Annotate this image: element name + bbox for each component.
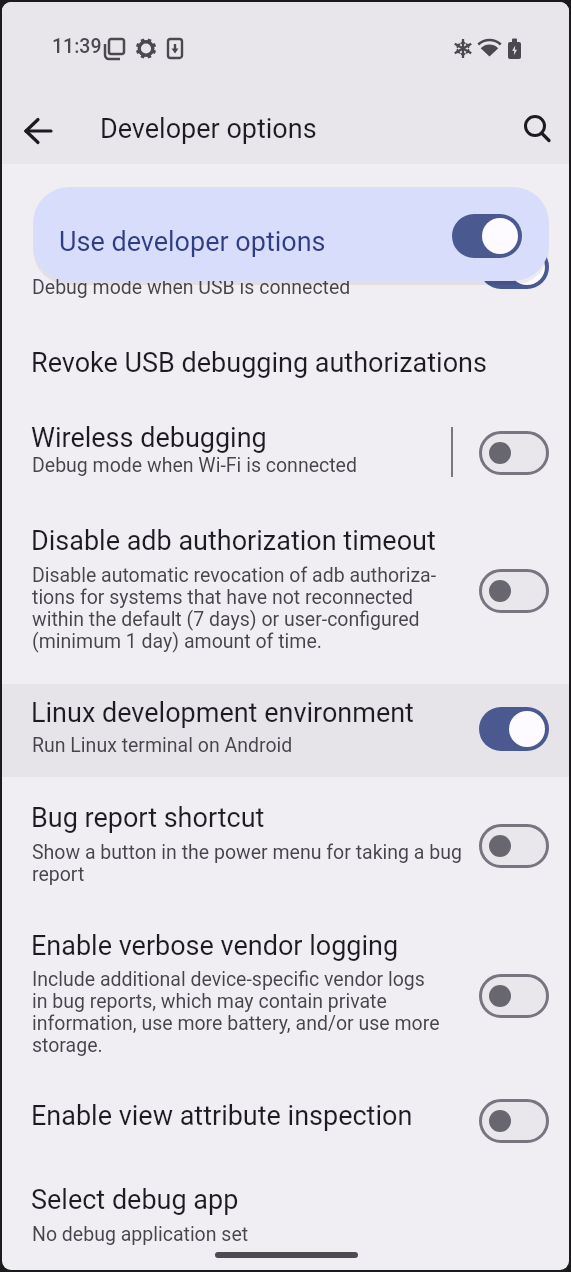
staticText: Revoke USB debugging authorizations bbox=[31, 347, 487, 379]
staticText: Select debug app bbox=[31, 1184, 239, 1216]
button[interactable] bbox=[15, 107, 63, 155]
button[interactable]: Bug report shortcut bbox=[2, 792, 569, 902]
button[interactable] bbox=[479, 974, 549, 1018]
staticText: Developer options bbox=[100, 113, 317, 145]
staticText: Debug mode when USB is connected bbox=[32, 276, 351, 299]
button[interactable]: Use developer options bbox=[33, 187, 549, 281]
staticText: Use developer options bbox=[59, 226, 326, 258]
staticText: Enable view attribute inspection bbox=[31, 1100, 413, 1132]
staticText: 11:39 bbox=[52, 35, 102, 58]
button[interactable] bbox=[452, 214, 522, 258]
staticText: Include additional device-specific vendo… bbox=[32, 968, 440, 1057]
staticText: Wireless debugging bbox=[31, 422, 267, 454]
button[interactable]: Wireless debugging bbox=[2, 410, 569, 498]
button[interactable] bbox=[479, 431, 549, 475]
staticText: Bug report shortcut bbox=[31, 802, 265, 834]
staticText: Run Linux terminal on Android bbox=[32, 734, 293, 757]
staticText: Debug mode when Wi-Fi is connected bbox=[32, 454, 357, 477]
staticText: Show a button in the power menu for taki… bbox=[32, 841, 462, 886]
button[interactable]: Revoke USB debugging authorizations bbox=[2, 322, 569, 402]
staticText: Disable adb authorization timeout bbox=[31, 525, 436, 557]
staticText: Disable automatic revocation of adb auth… bbox=[32, 564, 437, 653]
button[interactable]: Debug mode when USB is connected bbox=[2, 232, 569, 310]
button[interactable] bbox=[479, 1099, 549, 1143]
button[interactable] bbox=[479, 824, 549, 868]
button[interactable]: Enable verbose vendor logging bbox=[2, 920, 569, 1070]
staticText: No debug application set bbox=[32, 1223, 249, 1246]
button[interactable]: Select debug app bbox=[2, 1172, 569, 1257]
button[interactable] bbox=[479, 245, 549, 289]
button[interactable] bbox=[479, 707, 549, 751]
button[interactable]: Enable view attribute inspection bbox=[2, 1087, 569, 1157]
button[interactable] bbox=[479, 569, 549, 613]
staticText: Enable verbose vendor logging bbox=[31, 930, 399, 962]
button[interactable]: Disable adb authorization timeout bbox=[2, 512, 569, 667]
staticText: Linux development environment bbox=[31, 697, 414, 729]
button[interactable]: Linux development environment bbox=[2, 684, 569, 777]
button[interactable] bbox=[513, 105, 561, 153]
